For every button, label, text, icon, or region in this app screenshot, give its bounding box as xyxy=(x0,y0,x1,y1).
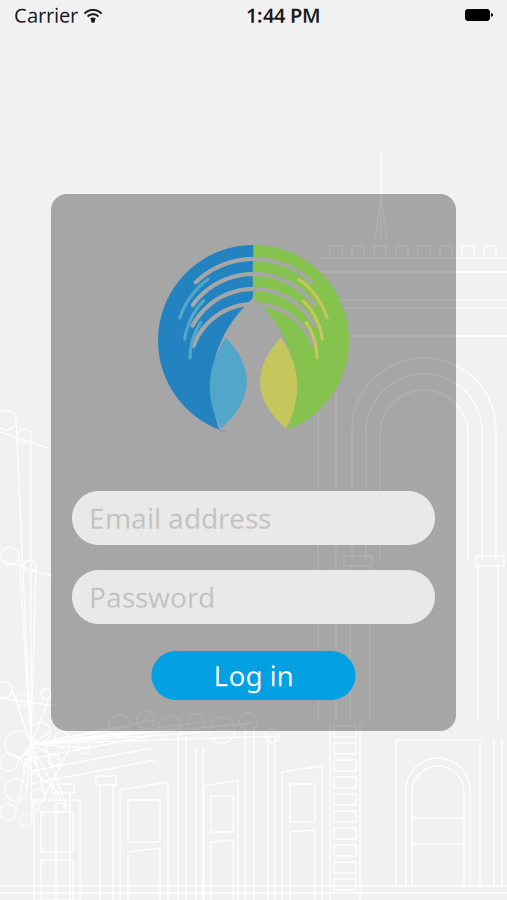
button[interactable]: Email address xyxy=(72,491,435,545)
staticText: Log in xyxy=(213,657,293,694)
staticText: Carrier xyxy=(14,2,78,28)
button[interactable]: Log in xyxy=(151,651,355,700)
staticText: Email address xyxy=(89,499,271,537)
staticText: Password xyxy=(89,578,215,616)
staticText: 1:44 PM xyxy=(246,2,321,28)
button[interactable]: Password xyxy=(72,570,435,624)
